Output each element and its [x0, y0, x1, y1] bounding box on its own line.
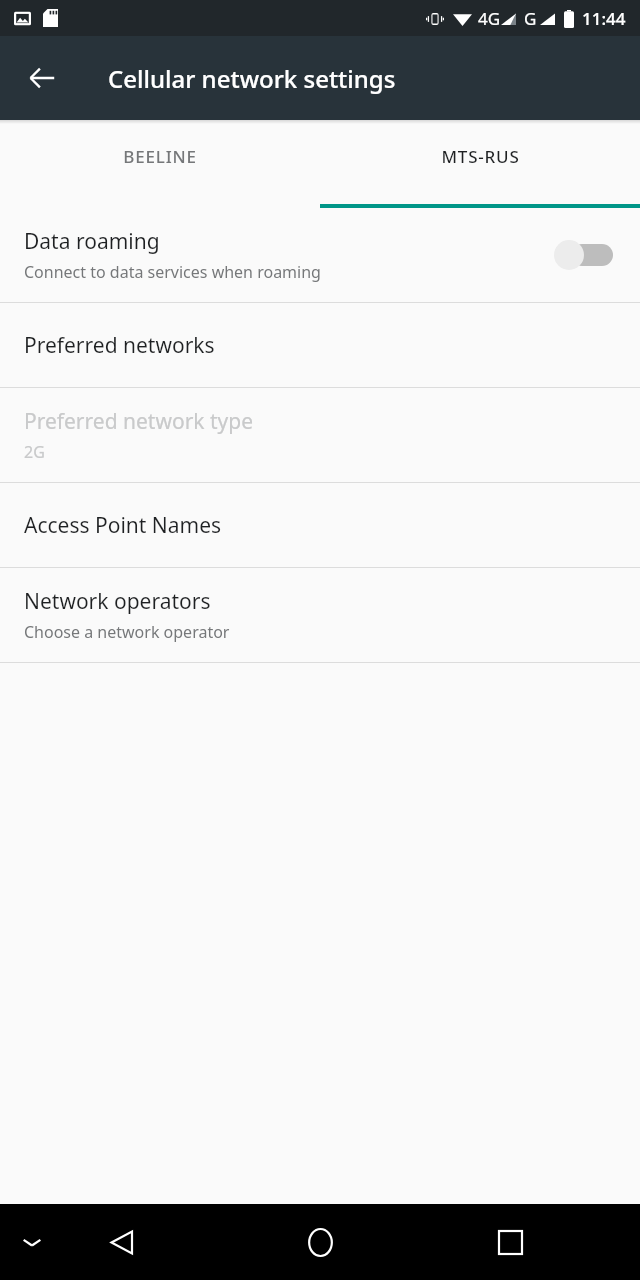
- button[interactable]: Back: [10, 46, 74, 110]
- staticText: Data roaming: [24, 227, 160, 256]
- staticText: MTS-RUS: [441, 145, 520, 168]
- staticText: Connect to data services when roaming: [24, 261, 321, 283]
- staticText: Choose a network operator: [24, 621, 230, 643]
- button[interactable]: Back: [92, 1212, 152, 1272]
- staticText: BEELINE: [123, 145, 197, 168]
- button[interactable]: Preferred network type: [0, 388, 640, 482]
- button[interactable]: MTS-RUS: [320, 124, 640, 208]
- staticText: 2G: [24, 441, 45, 463]
- staticText: 11:44: [582, 7, 626, 30]
- button[interactable]: Hide: [4, 1214, 60, 1270]
- button[interactable]: Home: [289, 1211, 351, 1273]
- staticText: Preferred networks: [24, 331, 215, 360]
- button[interactable]: BEELINE: [0, 124, 320, 208]
- staticText: Network operators: [24, 587, 211, 616]
- button[interactable]: Access Point Names: [0, 483, 640, 567]
- button[interactable]: Network operators: [0, 568, 640, 662]
- button[interactable]: Data roaming toggle: [554, 235, 616, 275]
- staticText: Preferred network type: [24, 407, 254, 436]
- staticText: G: [524, 7, 537, 30]
- button[interactable]: Preferred networks: [0, 303, 640, 387]
- staticText: Access Point Names: [24, 511, 222, 540]
- staticText: Cellular network settings: [108, 62, 396, 95]
- button[interactable]: Data roaming: [0, 208, 640, 302]
- staticText: 4G: [478, 7, 501, 30]
- button[interactable]: Recents: [480, 1212, 540, 1272]
